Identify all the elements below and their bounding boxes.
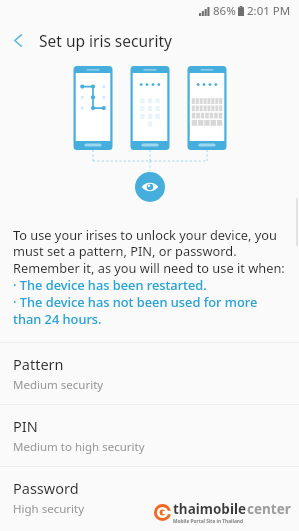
button[interactable]: Pattern (0, 343, 299, 404)
staticText: thaimobile (173, 500, 247, 518)
staticText: 86% (213, 3, 236, 19)
button[interactable]: PIN (0, 405, 299, 466)
staticText: High security (13, 501, 85, 517)
button[interactable]: Navigate up (0, 22, 36, 58)
staticText: Medium security (13, 377, 104, 393)
staticText: Medium to high security (13, 439, 145, 455)
staticText: Mobile Portal Site in Thailand (173, 518, 243, 525)
staticText: center (247, 500, 291, 518)
staticText: Password (13, 478, 79, 498)
staticText: PIN (13, 416, 38, 436)
button[interactable]: Password (0, 467, 299, 528)
staticText: Pattern (13, 354, 64, 374)
staticText: To use your irises to unlock your device… (13, 226, 286, 328)
staticText: Set up iris security (39, 30, 172, 51)
staticText: 2:01 PM (247, 3, 291, 19)
